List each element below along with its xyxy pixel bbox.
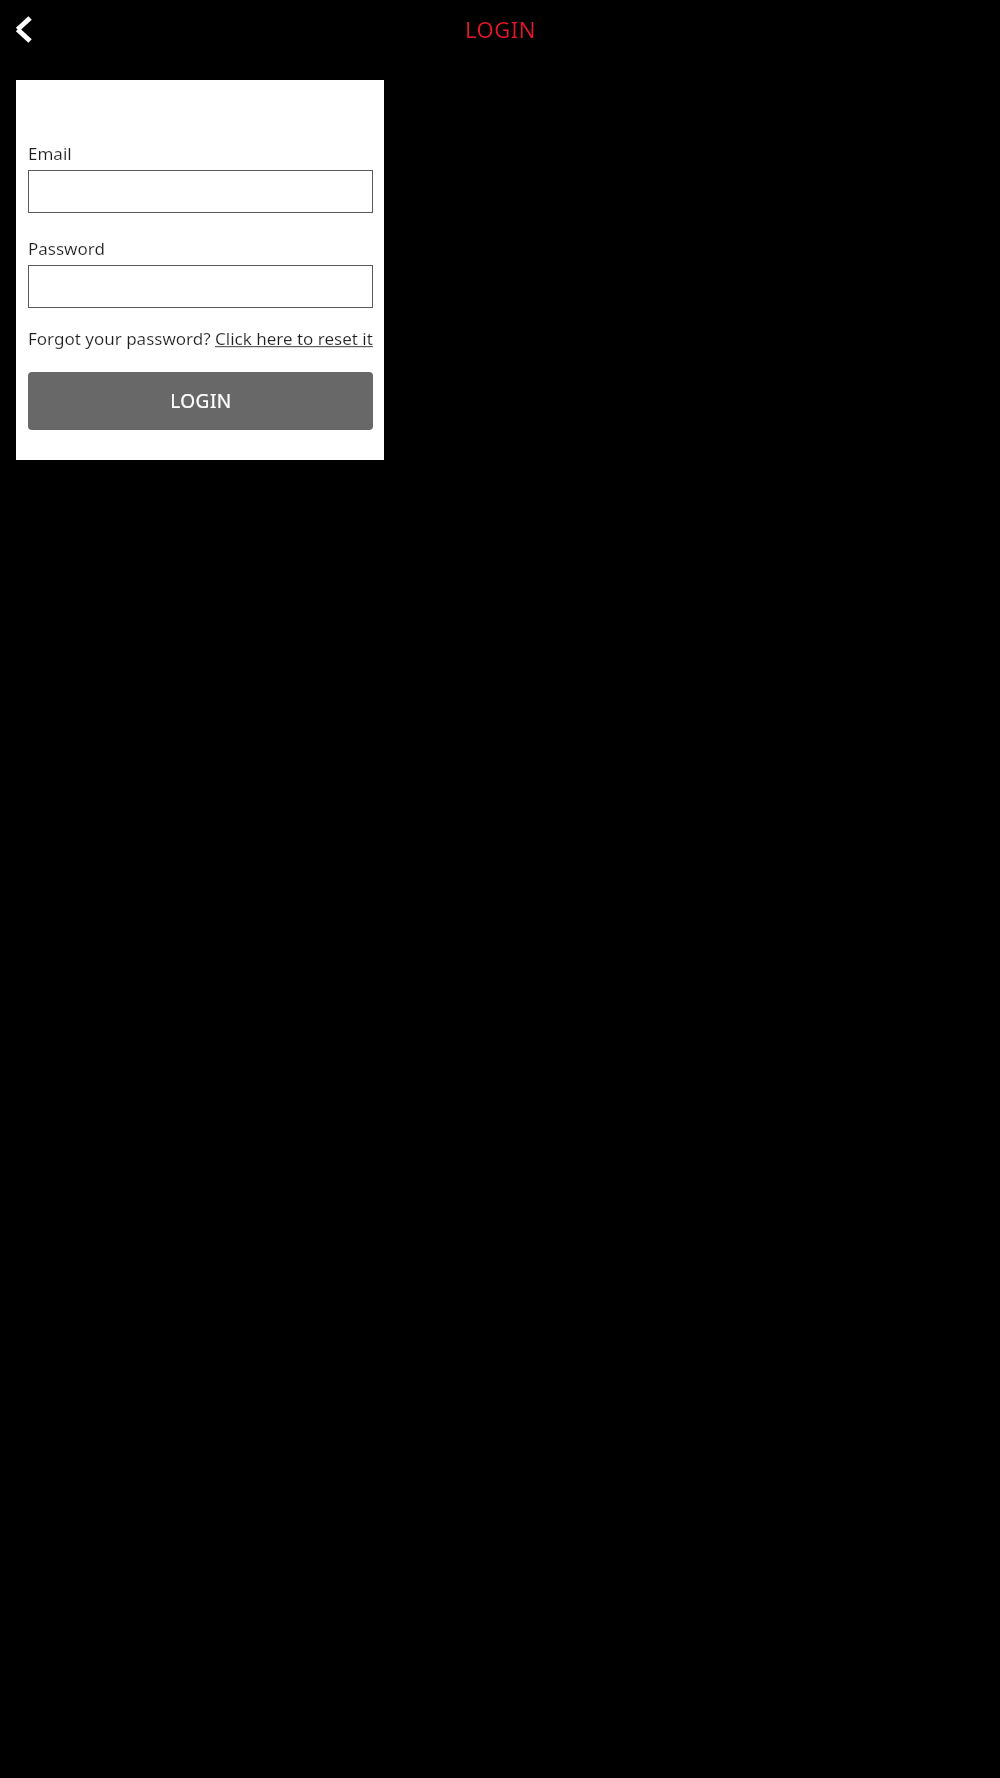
button[interactable]: Forgot your password? Click here to rese… xyxy=(28,327,373,350)
staticText: LOGIN xyxy=(170,388,232,414)
staticText: Email xyxy=(28,142,72,165)
button[interactable]: LOGIN xyxy=(28,372,373,430)
staticText: Password xyxy=(28,237,105,260)
staticText: Forgot your password? Click here to rese… xyxy=(28,327,373,350)
button[interactable]: Email input field xyxy=(28,170,373,213)
button[interactable]: Password input field xyxy=(28,265,373,308)
staticText: LOGIN xyxy=(465,14,536,44)
button[interactable]: Back xyxy=(4,9,44,49)
